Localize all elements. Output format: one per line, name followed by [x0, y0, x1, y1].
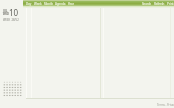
- staticText: JUL: [3, 9, 8, 13]
- staticText: Print: [167, 2, 174, 6]
- button[interactable]: Agenda: [55, 2, 66, 6]
- staticText: Agenda: [55, 2, 66, 6]
- button[interactable]: Week: [34, 2, 42, 6]
- staticText: Week: [34, 2, 42, 6]
- staticText: Year: [68, 2, 74, 6]
- staticText: Month: [44, 2, 53, 6]
- staticText: Refresh: [154, 2, 165, 6]
- button[interactable]: Refresh: [154, 2, 165, 6]
- staticText: WED: [3, 12, 10, 16]
- button[interactable]: Month: [44, 2, 53, 6]
- button[interactable]: Year: [68, 2, 74, 6]
- button[interactable]: 10: [9, 7, 19, 18]
- staticText: Search: [142, 2, 152, 6]
- button[interactable]: Day: [23, 0, 174, 8]
- staticText: WEEK 28/52: [3, 18, 19, 22]
- button[interactable]: Mini month calendar: [3, 81, 22, 97]
- button[interactable]: Print: [167, 2, 174, 6]
- button[interactable]: Search: [142, 2, 152, 6]
- button[interactable]: Day: [26, 2, 32, 6]
- staticText: Day: [26, 2, 32, 6]
- button[interactable]: Terms - Privacy: [157, 103, 174, 107]
